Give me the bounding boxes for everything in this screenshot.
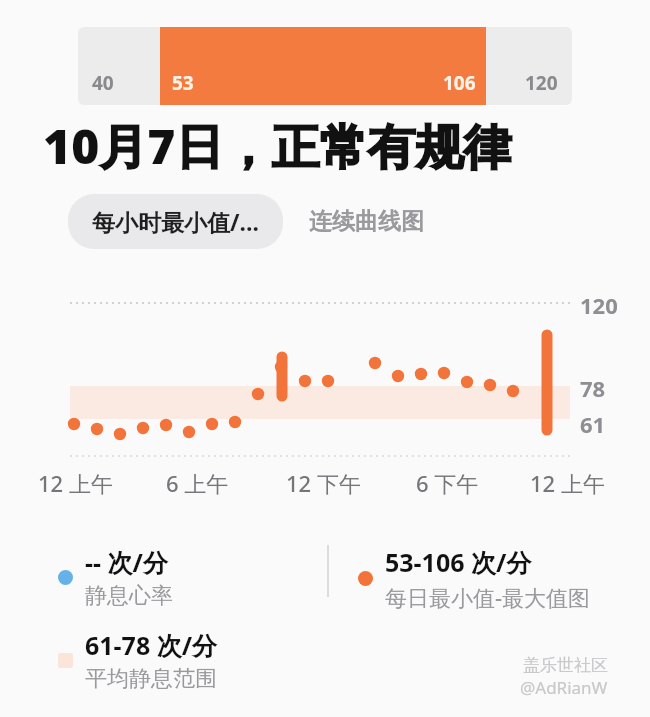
staticText: 6 上午 bbox=[166, 468, 229, 498]
staticText: 6 下午 bbox=[416, 468, 479, 498]
button[interactable]: 静息心率 bbox=[58, 545, 173, 610]
staticText: 61 bbox=[580, 409, 606, 439]
staticText: 78 bbox=[580, 373, 606, 403]
staticText: -- 次/分 bbox=[85, 545, 168, 579]
staticText: 10月7日，正常有规律 bbox=[43, 113, 512, 179]
button[interactable]: 平均静息范围 bbox=[58, 628, 218, 693]
button[interactable]: 每小时最小值/... bbox=[68, 194, 283, 249]
staticText: 120 bbox=[580, 290, 618, 320]
staticText: 61-78 次/分 bbox=[85, 628, 218, 662]
staticText: 连续曲线图 bbox=[309, 207, 424, 236]
button[interactable]: 连续曲线图 bbox=[283, 195, 450, 248]
button[interactable]: 每日最小值-最大值图 bbox=[358, 545, 591, 612]
staticText: 12 上午 bbox=[530, 468, 605, 498]
staticText: 106 bbox=[443, 70, 476, 96]
staticText: 40 bbox=[92, 70, 114, 96]
other: 每日最小值-最大值图 bbox=[358, 571, 373, 586]
staticText: 每小时最小值/... bbox=[92, 206, 259, 237]
button[interactable]: 40 bbox=[78, 27, 572, 105]
staticText: 静息心率 bbox=[85, 582, 173, 610]
staticText: 平均静息范围 bbox=[85, 665, 217, 693]
staticText: 120 bbox=[525, 70, 558, 96]
staticText: 12 上午 bbox=[38, 468, 113, 498]
staticText: 盖乐世社区 bbox=[523, 655, 608, 676]
staticText: 53 bbox=[172, 70, 194, 96]
staticText: 53-106 次/分 bbox=[385, 545, 532, 579]
staticText: @AdRianW bbox=[520, 676, 608, 699]
staticText: 每日最小值-最大值图 bbox=[385, 582, 591, 612]
other: 静息心率 bbox=[58, 570, 73, 585]
staticText: 12 下午 bbox=[286, 468, 361, 498]
